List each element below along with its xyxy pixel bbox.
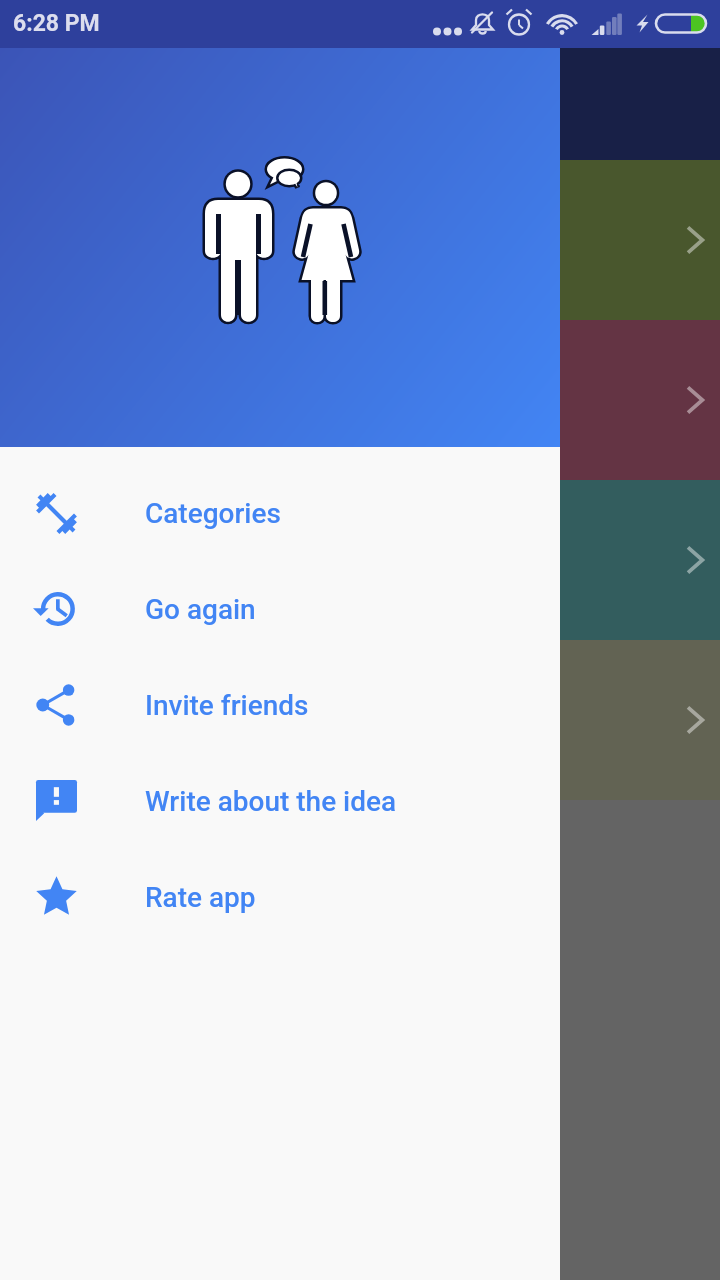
other: Open — [679, 225, 709, 255]
button[interactable]: Go again — [0, 561, 560, 657]
other: Open — [679, 705, 709, 735]
button[interactable]: Rate app — [0, 849, 560, 945]
staticText: 6:28 PM — [13, 10, 100, 37]
other: Open — [679, 385, 709, 415]
button[interactable]: Open — [0, 160, 720, 320]
button[interactable]: Write about the idea — [0, 753, 560, 849]
staticText: Go again — [145, 593, 256, 626]
staticText: Invite friends — [145, 689, 309, 722]
staticText: Write about the idea — [145, 785, 397, 818]
button[interactable]: Open — [0, 640, 720, 800]
other: Open — [679, 545, 709, 575]
button[interactable]: Categories — [0, 465, 560, 561]
staticText: Rate app — [145, 881, 256, 914]
button[interactable]: Invite friends — [0, 657, 560, 753]
button[interactable]: Open — [0, 480, 720, 640]
button[interactable]: Open — [0, 320, 720, 480]
staticText: Categories — [145, 497, 281, 530]
